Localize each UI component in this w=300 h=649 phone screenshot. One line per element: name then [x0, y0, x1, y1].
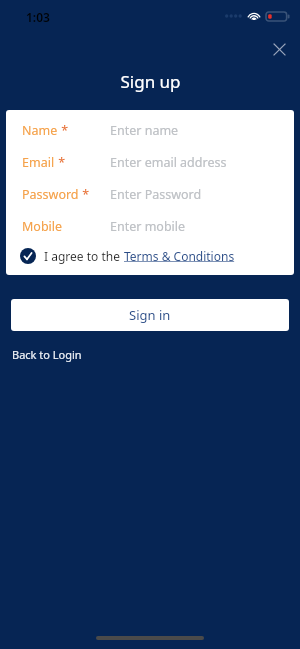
staticText: Enter email address: [110, 154, 227, 171]
staticText: *: [58, 122, 69, 139]
button[interactable]: Back to Login: [12, 347, 82, 362]
staticText: Back to Login: [12, 347, 82, 362]
staticText: Email: [22, 154, 55, 171]
staticText: Enter name: [110, 122, 179, 139]
staticText: Enter mobile: [110, 218, 186, 235]
staticText: Sign up: [120, 70, 181, 93]
button[interactable]: Sign in: [11, 299, 289, 331]
button[interactable]: Terms & Conditions: [124, 248, 235, 264]
button[interactable]: Password: [6, 178, 294, 210]
button[interactable]: Email: [6, 146, 294, 178]
staticText: I agree to the: [44, 248, 124, 264]
staticText: Name: [22, 122, 58, 139]
staticText: Mobile: [22, 218, 63, 235]
staticText: *: [79, 186, 90, 203]
button[interactable]: Mobile: [6, 210, 294, 242]
staticText: Sign in: [129, 306, 171, 324]
button[interactable]: Close: [266, 36, 292, 62]
staticText: 1:03: [26, 9, 50, 25]
button[interactable]: Name: [6, 114, 294, 146]
staticText: Password: [22, 186, 79, 203]
button[interactable]: I agree to the: [6, 242, 294, 270]
staticText: *: [55, 154, 66, 171]
staticText: Enter Password: [110, 186, 202, 203]
